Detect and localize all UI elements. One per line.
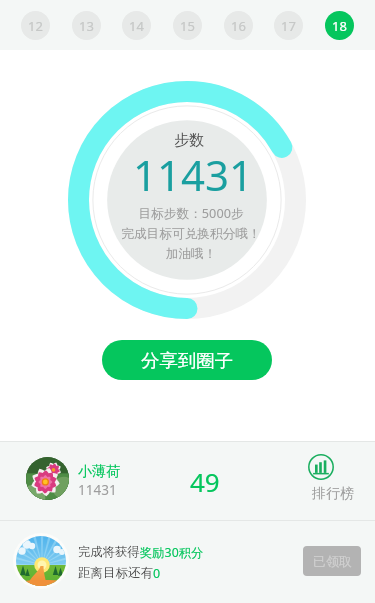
button[interactable]: 16 — [224, 11, 253, 40]
button[interactable]: 小薄荷 — [0, 441, 375, 520]
button[interactable]: 15 — [173, 11, 202, 40]
staticText: 距离目标还有 — [78, 565, 153, 581]
other: 排行榜 — [308, 454, 334, 480]
button[interactable]: 已领取 — [303, 546, 361, 576]
button[interactable]: 排行榜 — [298, 454, 346, 516]
staticText: 排行榜 — [312, 485, 354, 503]
staticText: 14 — [129, 17, 144, 35]
button[interactable]: 14 — [122, 11, 151, 40]
button[interactable]: 12 — [21, 11, 50, 40]
staticText: 完成将获得 — [78, 544, 140, 559]
button[interactable]: 分享到圈子 — [102, 340, 272, 380]
staticText: 步数 — [70, 131, 308, 150]
staticText: 12 — [28, 17, 43, 35]
button[interactable]: 13 — [72, 11, 101, 40]
button[interactable]: 17 — [274, 11, 303, 40]
staticText: 小薄荷 — [78, 463, 120, 481]
staticText: 11431 — [78, 481, 117, 499]
staticText: 13 — [79, 17, 94, 35]
staticText: 分享到圈子 — [141, 349, 233, 372]
staticText: 奖励30积分 — [140, 544, 204, 561]
staticText: 0 — [153, 565, 161, 582]
staticText: 已领取 — [313, 553, 352, 569]
staticText: 15 — [180, 17, 195, 35]
button[interactable]: 18 — [325, 11, 354, 40]
staticText: 49 — [190, 464, 220, 499]
staticText: 11431 — [74, 146, 312, 203]
staticText: 18 — [332, 17, 347, 35]
staticText: 目标步数：5000步 完成目标可兑换积分哦！ 加油哦！ — [72, 204, 310, 262]
staticText: 16 — [231, 17, 246, 35]
staticText: 17 — [281, 17, 296, 35]
